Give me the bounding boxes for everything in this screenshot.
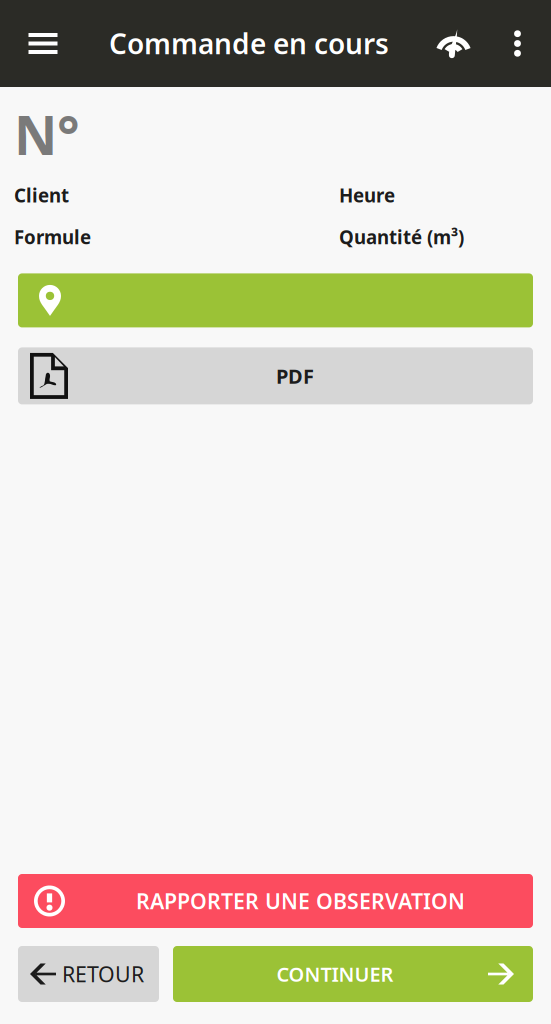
- staticText: RAPPORTER UNE OBSERVATION: [136, 887, 465, 915]
- staticText: Commande en cours: [109, 25, 389, 62]
- staticText: PDF: [276, 363, 314, 389]
- button[interactable]: RETOUR: [18, 946, 159, 1002]
- button[interactable]: RAPPORTER UNE OBSERVATION: [18, 874, 533, 928]
- staticText: Heure: [339, 183, 395, 208]
- button[interactable]: Menu: [0, 0, 86, 87]
- button[interactable]: État du réseau: [423, 0, 484, 87]
- button[interactable]: Plus d'options: [484, 0, 551, 87]
- staticText: RETOUR: [62, 960, 144, 988]
- button[interactable]: Localisation: [18, 273, 533, 327]
- staticText: CONTINUER: [276, 961, 393, 987]
- staticText: Client: [14, 183, 69, 208]
- staticText: Formule: [14, 225, 91, 249]
- staticText: Quantité (m³): [339, 225, 464, 249]
- staticText: N°: [14, 99, 80, 170]
- button[interactable]: PDF: [18, 347, 533, 404]
- button[interactable]: CONTINUER: [173, 946, 533, 1002]
